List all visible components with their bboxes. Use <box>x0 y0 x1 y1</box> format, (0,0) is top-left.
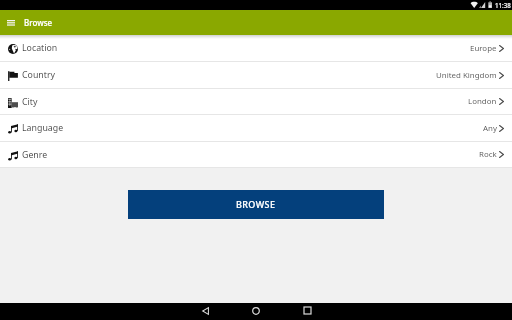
staticText: United Kingdom <box>436 70 497 81</box>
staticText: Country <box>22 69 56 81</box>
button[interactable]: Home <box>239 303 273 320</box>
button[interactable]: BROWSE <box>128 190 384 219</box>
staticText: Browse <box>24 17 53 28</box>
button[interactable]: Recent apps <box>290 303 324 320</box>
button[interactable]: Country <box>0 62 512 88</box>
staticText: Any <box>483 123 497 134</box>
button[interactable]: Language <box>0 115 512 141</box>
staticText: 11:38 <box>495 1 511 9</box>
staticText: London <box>468 96 497 107</box>
button[interactable]: Location <box>0 35 512 61</box>
staticText: City <box>22 96 38 108</box>
staticText: Location <box>22 42 58 54</box>
button[interactable]: Back <box>188 303 222 320</box>
staticText: Europe <box>470 43 497 54</box>
button[interactable]: Genre <box>0 142 512 167</box>
button[interactable]: Open navigation drawer <box>0 10 22 35</box>
staticText: Rock <box>479 149 497 160</box>
staticText: BROWSE <box>236 198 276 210</box>
button[interactable]: City <box>0 89 512 114</box>
staticText: Genre <box>22 149 48 161</box>
staticText: Language <box>22 122 64 134</box>
